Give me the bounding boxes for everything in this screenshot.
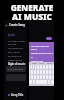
button[interactable] bbox=[48, 80, 50, 84]
button[interactable]: song bbox=[32, 62, 37, 65]
staticText: It's 3am and the city is asleep but my m… bbox=[31, 44, 53, 64]
button[interactable] bbox=[34, 75, 36, 79]
button[interactable] bbox=[43, 65, 45, 69]
button[interactable] bbox=[52, 70, 54, 74]
button[interactable] bbox=[49, 65, 51, 69]
button[interactable]: song bbox=[39, 62, 44, 65]
button[interactable]: Pop, Electronic bbox=[6, 66, 26, 72]
button[interactable] bbox=[43, 70, 45, 74]
button[interactable] bbox=[40, 70, 42, 74]
button[interactable]: song bbox=[47, 62, 52, 65]
button[interactable] bbox=[49, 70, 51, 74]
button[interactable] bbox=[29, 65, 30, 69]
button[interactable] bbox=[52, 65, 54, 69]
button[interactable] bbox=[43, 75, 45, 79]
button[interactable] bbox=[29, 80, 32, 84]
staticText: Pop, Electronic bbox=[8, 68, 24, 71]
button[interactable] bbox=[52, 75, 54, 79]
button[interactable] bbox=[37, 65, 39, 69]
button[interactable] bbox=[33, 80, 35, 84]
button[interactable] bbox=[37, 70, 39, 74]
button[interactable] bbox=[51, 80, 54, 84]
button[interactable] bbox=[40, 75, 42, 79]
button[interactable] bbox=[46, 75, 48, 79]
staticText: Create Song bbox=[9, 23, 25, 27]
staticText: GENERATE AI MUSIC bbox=[0, 2, 64, 22]
staticText: Lyrics bbox=[8, 33, 15, 36]
button[interactable] bbox=[49, 75, 51, 79]
button[interactable] bbox=[33, 65, 34, 69]
button[interactable] bbox=[46, 65, 48, 69]
button[interactable] bbox=[37, 75, 39, 79]
button[interactable] bbox=[29, 70, 30, 74]
button[interactable] bbox=[40, 65, 42, 69]
button[interactable] bbox=[31, 70, 33, 74]
button[interactable] bbox=[34, 70, 36, 74]
button[interactable]: Close bbox=[5, 24, 8, 27]
button[interactable] bbox=[29, 75, 30, 79]
staticText: Song Title bbox=[11, 93, 24, 97]
staticText: It's late at night and the city lights a… bbox=[8, 39, 26, 70]
button[interactable] bbox=[46, 70, 48, 74]
button[interactable] bbox=[31, 75, 33, 79]
button[interactable] bbox=[31, 65, 32, 69]
staticText: Style of music bbox=[8, 62, 26, 66]
button[interactable] bbox=[35, 65, 36, 69]
